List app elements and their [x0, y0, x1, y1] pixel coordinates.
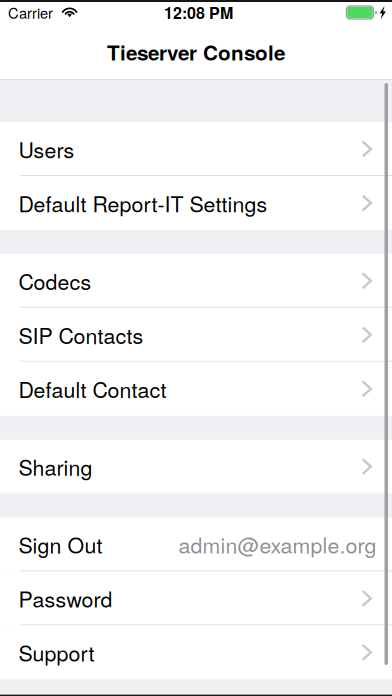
staticText: Support [18, 637, 94, 668]
staticText: 12:08 PM [164, 1, 233, 24]
button[interactable]: Users [0, 122, 392, 176]
staticText: Carrier [8, 2, 53, 23]
staticText: Sharing [18, 451, 92, 482]
staticText: Tieserver Console [107, 37, 285, 67]
staticText: Default Contact [18, 373, 166, 404]
staticText: admin@example.org [178, 529, 376, 560]
button[interactable]: Codecs [0, 254, 392, 308]
button[interactable]: Sign Out [0, 517, 392, 571]
button[interactable]: Sharing [0, 440, 392, 494]
staticText: Default Report-IT Settings [18, 188, 267, 218]
button[interactable]: Support [0, 625, 392, 679]
staticText: Password [18, 583, 112, 614]
staticText: Codecs [18, 265, 91, 296]
button[interactable]: Default Contact [0, 362, 392, 416]
button[interactable]: Default Report-IT Settings [0, 176, 392, 230]
staticText: Sign Out [18, 529, 102, 560]
button[interactable]: SIP Contacts [0, 308, 392, 362]
staticText: Users [18, 134, 74, 164]
staticText: SIP Contacts [18, 319, 143, 350]
button[interactable]: Password [0, 571, 392, 625]
